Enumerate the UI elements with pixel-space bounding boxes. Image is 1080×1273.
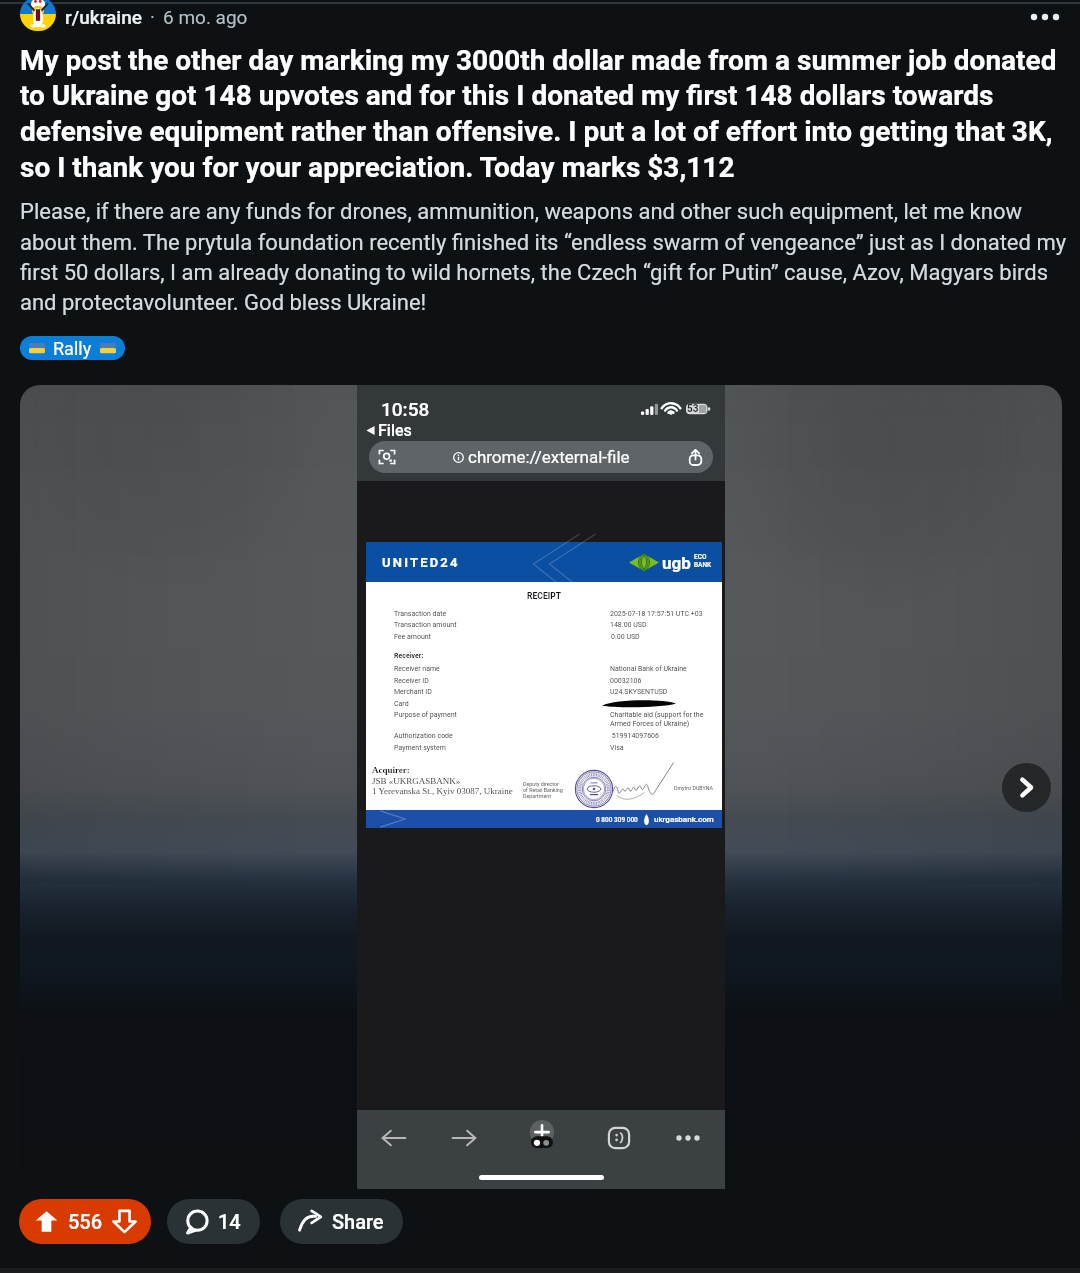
staticText: 10:58 (381, 398, 430, 420)
staticText: Receiver: (394, 652, 424, 660)
staticText: JSB «UKRGASBANK» 1 Yerevanska St., Kyiv … (372, 776, 513, 795)
staticText: Purpose of payment (394, 711, 457, 719)
staticText: 556 (68, 1210, 103, 1233)
button[interactable]: 556 (19, 1199, 151, 1244)
staticText: UNITED24 (382, 555, 460, 570)
staticText: 6 mo. ago (163, 6, 248, 28)
staticText: Authorization code (394, 732, 453, 740)
staticText: 148.00 USD (610, 621, 647, 629)
button[interactable]: Next image (1002, 763, 1051, 812)
staticText: Receiver name (394, 665, 440, 673)
staticText: 0.00 USD (611, 633, 640, 641)
staticText: Transaction date (394, 610, 447, 618)
staticText: Merchant ID (394, 688, 432, 696)
staticText: National Bank of Ukraine (610, 665, 687, 673)
staticText: BANK (694, 561, 712, 569)
button[interactable]: 14 (167, 1199, 260, 1244)
button[interactable]: Share (280, 1199, 403, 1244)
staticText: Dmytro DUBYNA (674, 785, 713, 791)
button[interactable]: 10:58 (20, 385, 1062, 1189)
staticText: U24.SKYSENTUSD (610, 688, 668, 696)
staticText: Charitable aid (support for the Armed Fo… (610, 711, 704, 728)
staticText: Payment system (394, 744, 446, 752)
staticText: My post the other day marking my 3000th … (20, 44, 1068, 184)
staticText: Share (332, 1210, 384, 1233)
staticText: 2025-07-18 17:57:51 UTC +03 (610, 610, 703, 618)
staticText: Acquirer: (372, 765, 410, 775)
staticText: ECO (694, 553, 707, 561)
staticText: Visa (610, 744, 624, 752)
staticText: Receiver ID (394, 677, 429, 685)
button[interactable]: Rally (20, 336, 125, 360)
button[interactable]: More options (1024, 0, 1066, 34)
staticText: 53 (687, 403, 699, 415)
staticText: 0 800 309 000 (596, 816, 638, 824)
staticText: r/ukraine (65, 6, 142, 28)
staticText: 519914097606 (610, 732, 659, 740)
staticText: Please, if there are any funds for drone… (20, 199, 1070, 315)
staticText: chrome://external-file (468, 447, 630, 467)
staticText: Card (394, 700, 409, 708)
staticText: Fee amount (394, 633, 431, 641)
staticText: RECEIPT (366, 591, 722, 601)
staticText: 00032106 (610, 677, 642, 685)
button[interactable]: r/ukraine community (20, 0, 56, 31)
staticText: 14 (218, 1210, 241, 1233)
staticText: Rally (53, 338, 92, 359)
staticText: ugb (662, 553, 691, 573)
staticText: · (150, 6, 155, 28)
staticText: Files (378, 421, 412, 440)
staticText: ukrgasbank.com (654, 815, 714, 824)
staticText: Transaction amount (394, 621, 457, 629)
staticText: Deputy director of Retail Banking Depart… (523, 781, 563, 799)
